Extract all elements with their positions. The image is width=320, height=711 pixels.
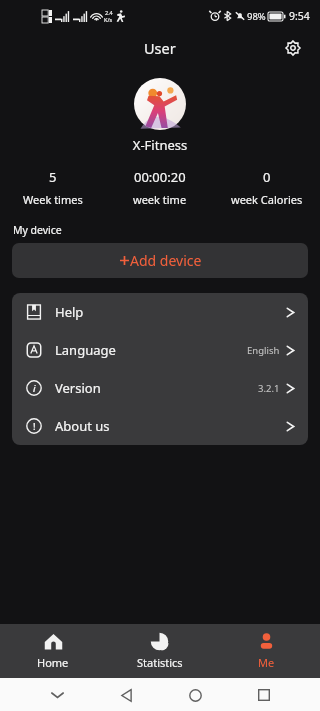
staticText: About us [55,417,110,435]
staticText: week time [133,192,187,207]
button[interactable]: Home [182,682,208,708]
button[interactable]: Hide keyboard [44,682,70,708]
staticText: Me [258,655,275,670]
staticText: 3.2.1 [258,382,280,395]
button[interactable]: Statistics [106,624,213,678]
button[interactable]: Settings [280,35,306,61]
button[interactable]: Home [0,624,106,678]
staticText: X-Fitness [0,136,320,154]
staticText: Help [55,303,84,321]
staticText: Week times [23,192,83,207]
button[interactable]: Help [12,293,308,331]
staticText: 9:54 [289,9,310,23]
staticText: 5 [49,168,57,186]
button[interactable]: ! [12,407,308,445]
staticText: 2.4 [105,9,113,16]
staticText: i [33,382,36,395]
button[interactable]: Back [113,682,139,708]
staticText: Version [55,379,101,397]
staticText: 98% [247,10,266,23]
staticText: Home [37,655,69,670]
staticText: K/s [104,16,113,23]
staticText: 0 [263,168,271,186]
staticText: English [247,344,280,357]
staticText: Statistics [137,655,183,670]
staticText: Add device [130,251,202,270]
staticText: week Calories [231,192,303,207]
staticText: ! [33,420,36,433]
button[interactable]: Recents [251,682,277,708]
staticText: 00:00:20 [134,168,186,186]
staticText: My device [13,223,62,237]
staticText: Language [55,341,116,359]
staticText: User [144,38,176,58]
button[interactable]: i [12,369,308,407]
button[interactable]: Add device [12,243,308,278]
button[interactable]: Language [12,331,308,369]
button[interactable]: Me [213,624,320,678]
